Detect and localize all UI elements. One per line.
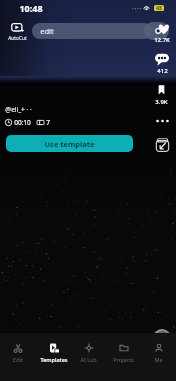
staticText: 10:48 (19, 2, 43, 14)
button[interactable]: Like (154, 23, 170, 44)
button[interactable]: Edit (0, 342, 36, 364)
staticText: Templates (40, 356, 68, 363)
staticText: 00:10 (14, 118, 31, 127)
staticText: 7 (46, 118, 50, 127)
staticText: Projects (113, 356, 134, 363)
staticText: 3.9K (155, 98, 168, 106)
button[interactable]: AI Lab (71, 342, 106, 364)
staticText: 412 (157, 67, 168, 75)
staticText: @eli_+ · · (5, 105, 32, 114)
staticText: edit (40, 26, 54, 36)
button[interactable]: edit (32, 23, 152, 39)
button[interactable]: Download (152, 134, 172, 154)
staticText: AI Lab (80, 356, 97, 363)
button[interactable]: AutoCut (4, 22, 31, 42)
button[interactable]: More options (153, 117, 171, 125)
staticText: AutoCut (8, 35, 27, 42)
button[interactable]: Projects (106, 342, 141, 364)
staticText: 43 (156, 5, 162, 11)
button[interactable]: Use template (6, 135, 133, 152)
button[interactable]: Me (141, 342, 176, 364)
button[interactable]: Save (155, 84, 168, 106)
staticText: 12.7K (154, 36, 170, 44)
staticText: Edit (13, 356, 23, 363)
staticText: Me (154, 356, 163, 363)
button[interactable]: Templates (36, 342, 71, 364)
button[interactable]: Comments (155, 53, 169, 75)
staticText: Use template (44, 139, 95, 149)
